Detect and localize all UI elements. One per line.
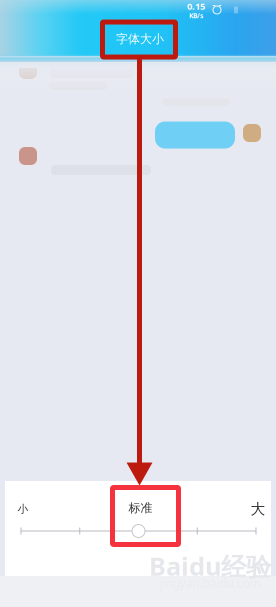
staticText: jingyan.baidu.com (159, 575, 260, 591)
staticText: 字体大小 (116, 32, 164, 46)
staticText: 大 (250, 500, 265, 518)
staticText: KB/s (189, 11, 203, 20)
staticText: 0.15 (187, 0, 205, 12)
staticText: 标准 (128, 501, 152, 515)
staticText: 小 (17, 502, 28, 515)
staticText: Baidu经验 (149, 549, 271, 583)
